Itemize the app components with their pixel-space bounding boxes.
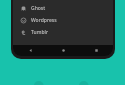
button[interactable]: Tumblr — [13, 26, 113, 38]
button[interactable]: Home — [47, 45, 80, 56]
button[interactable]: Ghost — [13, 2, 113, 14]
staticText: Ghost — [31, 5, 46, 12]
staticText: Wordpress — [31, 17, 57, 24]
button[interactable]: Wordpress — [13, 14, 113, 26]
button[interactable]: Recents — [80, 45, 113, 56]
button[interactable]: Back — [13, 45, 47, 56]
staticText: Tumblr — [31, 29, 48, 36]
